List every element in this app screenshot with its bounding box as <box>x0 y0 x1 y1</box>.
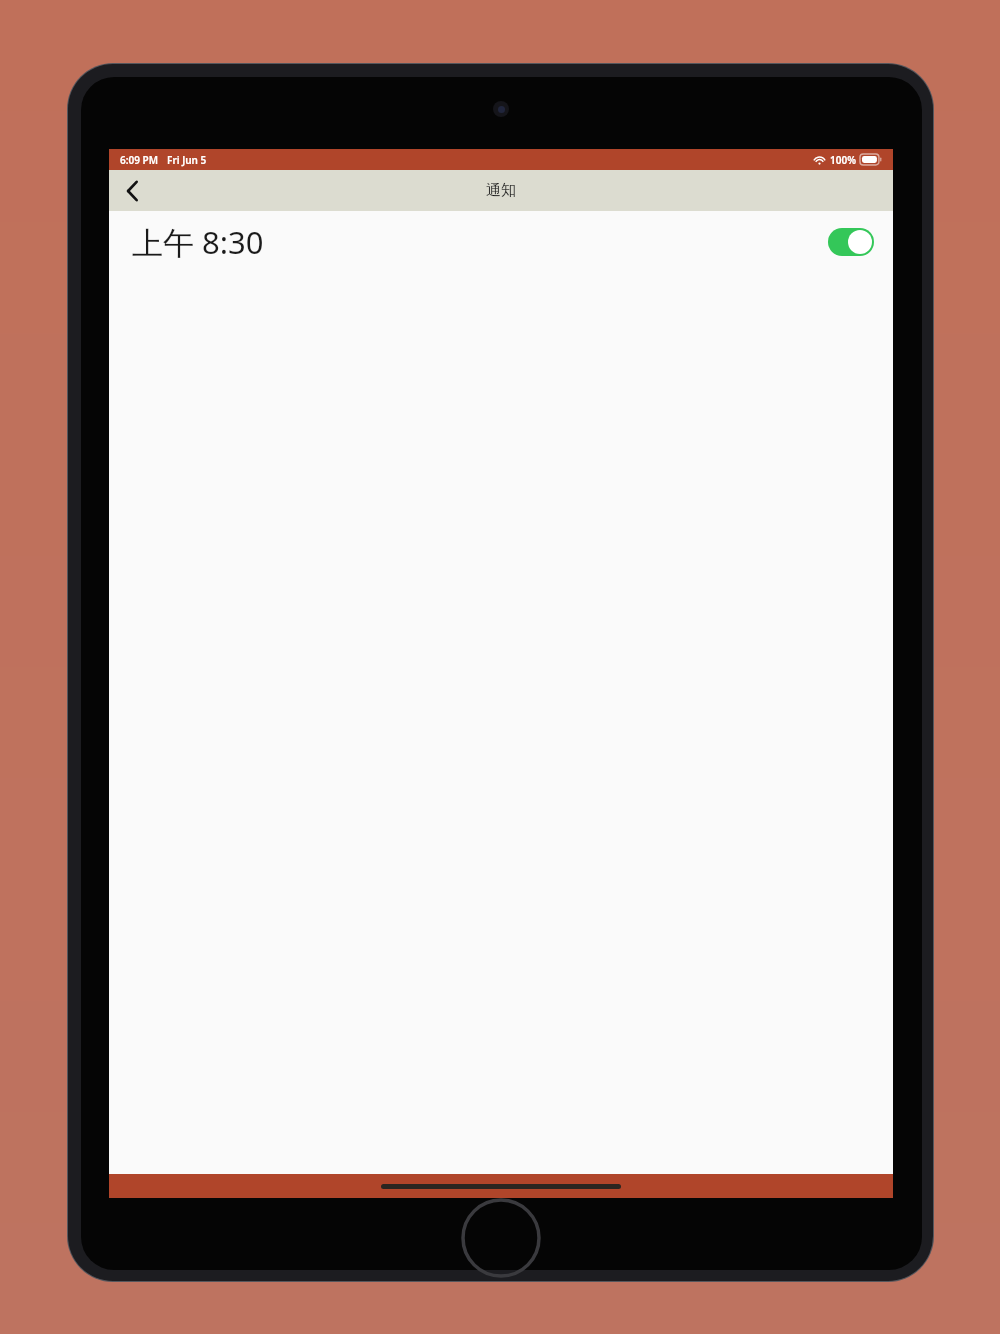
staticText: 上午 8:30 <box>132 221 264 263</box>
staticText: 6:09 PM <box>120 153 158 167</box>
staticText: 100% <box>830 153 856 167</box>
staticText: Fri Jun 5 <box>167 153 207 167</box>
button[interactable]: Back <box>109 170 155 211</box>
staticText: 通知 <box>486 181 516 200</box>
button[interactable]: Alarm enabled toggle <box>828 228 874 256</box>
button[interactable]: 上午 8:30 <box>109 211 893 273</box>
